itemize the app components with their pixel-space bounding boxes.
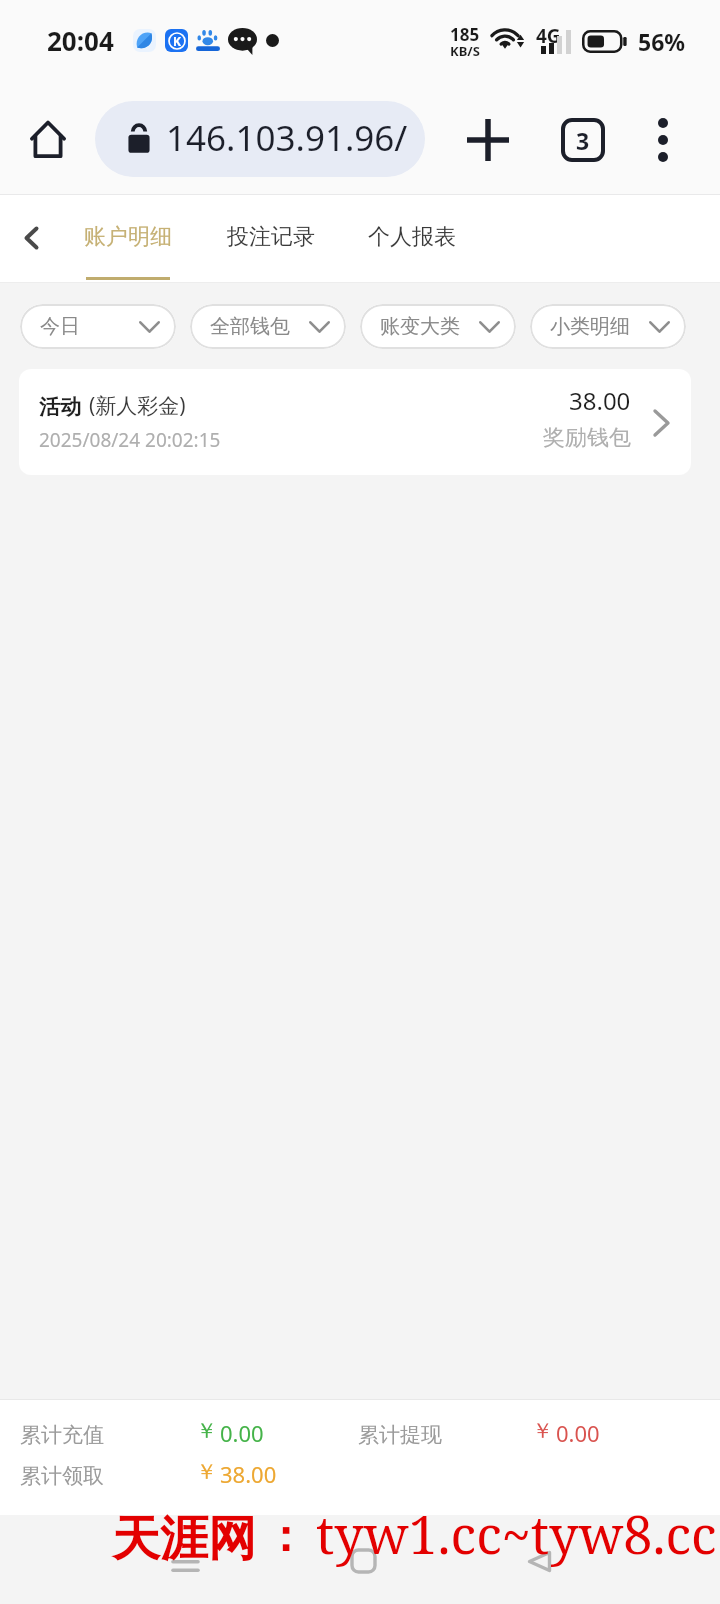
staticText: 账户明细 [84, 223, 172, 251]
staticText: 146.103.91.96/ [166, 114, 408, 162]
button[interactable]: Recents [155, 1530, 215, 1590]
button[interactable]: Tabs [551, 105, 615, 175]
button[interactable]: 小类明细 [530, 304, 686, 349]
staticText: (新人彩金) [89, 391, 186, 420]
staticText: 185 [450, 23, 480, 46]
staticText: 小类明细 [550, 314, 630, 339]
staticText: 2025/08/24 20:02:15 [39, 427, 221, 453]
button[interactable]: 账户明细 [68, 195, 188, 282]
staticText: 38.00 [569, 384, 631, 417]
staticText: ￥ [196, 1418, 217, 1444]
staticText: 累计充值 [20, 1422, 104, 1448]
staticText: K [173, 33, 181, 49]
staticText: 活动 [39, 394, 81, 420]
button[interactable]: More options [631, 105, 695, 175]
button[interactable]: 个人报表 [352, 195, 472, 282]
staticText: 今日 [40, 314, 80, 339]
button[interactable]: Home [335, 1530, 395, 1590]
staticText: tyw1.cc~tyw8.cc [316, 1498, 717, 1569]
button[interactable]: Home [16, 104, 80, 174]
button[interactable]: Back [5, 210, 57, 266]
button[interactable]: New tab [456, 105, 520, 175]
staticText: 0.00 [220, 1418, 264, 1448]
staticText: 投注记录 [227, 223, 315, 251]
staticText: 4G [536, 23, 561, 48]
staticText: 累计领取 [20, 1463, 104, 1489]
staticText: ： [263, 1509, 307, 1564]
staticText: 20:04 [47, 23, 114, 58]
button[interactable]: 全部钱包 [190, 304, 346, 349]
button[interactable]: 146.103.91.96/ [95, 101, 425, 177]
staticText: 0.00 [556, 1418, 600, 1448]
staticText: 56% [638, 26, 686, 57]
staticText: 账变大类 [380, 314, 460, 339]
button[interactable]: Back [510, 1530, 570, 1590]
staticText: KB/S [450, 42, 480, 60]
staticText: 38.00 [220, 1459, 277, 1489]
staticText: ￥ [196, 1459, 217, 1485]
button[interactable]: 今日 [20, 304, 176, 349]
button[interactable]: 活动 [19, 369, 691, 475]
staticText: 个人报表 [368, 223, 456, 251]
staticText: 全部钱包 [210, 314, 290, 339]
button[interactable]: 账变大类 [360, 304, 516, 349]
staticText: 奖励钱包 [543, 424, 631, 452]
staticText: 天涯网 [112, 1509, 256, 1569]
button[interactable]: 投注记录 [211, 195, 331, 282]
staticText: 3 [576, 125, 590, 156]
staticText: 累计提现 [358, 1422, 442, 1448]
staticText: ￥ [532, 1418, 553, 1444]
